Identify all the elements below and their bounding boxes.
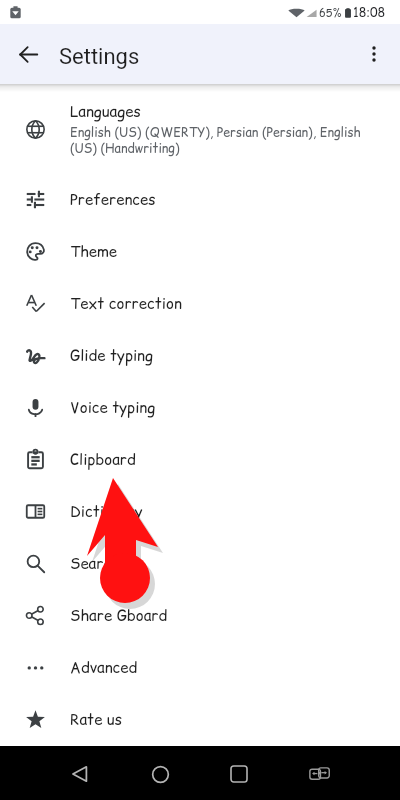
- staticText: Theme: [70, 241, 117, 262]
- button[interactable]: More options: [352, 32, 396, 76]
- button[interactable]: Glide typing: [0, 329, 400, 381]
- button[interactable]: Recent apps: [215, 750, 263, 798]
- button[interactable]: Advanced: [0, 641, 400, 693]
- button[interactable]: Languages: [0, 85, 400, 173]
- staticText: Advanced: [70, 657, 138, 678]
- staticText: Languages: [70, 101, 141, 122]
- staticText: Text correction: [70, 293, 182, 314]
- button[interactable]: Back: [56, 750, 104, 798]
- button[interactable]: Text correction: [0, 277, 400, 329]
- button[interactable]: Home: [136, 750, 184, 798]
- staticText: Settings: [59, 44, 140, 70]
- staticText: Glide typing: [70, 345, 153, 366]
- staticText: Dictionary: [70, 501, 143, 522]
- button[interactable]: Navigate up: [6, 32, 50, 76]
- staticText: English (US) (QWERTY), Persian (Persian)…: [70, 124, 361, 157]
- staticText: 65%: [319, 5, 342, 20]
- staticText: Share Gboard: [70, 605, 168, 626]
- button[interactable]: Preferences: [0, 173, 400, 225]
- staticText: Preferences: [70, 189, 156, 210]
- button[interactable]: Rate us: [0, 693, 400, 745]
- button[interactable]: Search: [0, 537, 400, 589]
- staticText: Voice typing: [70, 397, 156, 418]
- button[interactable]: Dictionary: [0, 485, 400, 537]
- staticText: 18:08: [353, 4, 386, 21]
- staticText: Clipboard: [70, 449, 136, 470]
- button[interactable]: Share Gboard: [0, 589, 400, 641]
- button[interactable]: Theme: [0, 225, 400, 277]
- staticText: Rate us: [70, 709, 122, 730]
- button[interactable]: Voice typing: [0, 381, 400, 433]
- button[interactable]: Clipboard: [0, 433, 400, 485]
- button[interactable]: Rotate screen: [296, 750, 344, 798]
- staticText: Search: [70, 553, 120, 574]
